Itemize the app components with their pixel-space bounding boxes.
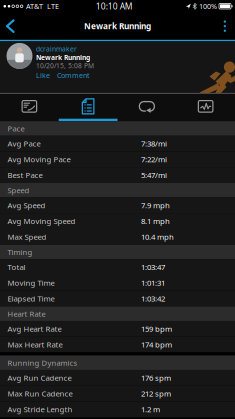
staticText: 1:01:31	[141, 278, 165, 288]
staticText: Avg Run Cadence	[7, 373, 71, 383]
staticText: 7.9 mph	[141, 200, 170, 210]
staticText: Avg Moving Pace	[7, 154, 70, 164]
staticText: Comment	[57, 70, 90, 80]
staticText: 8.1 mph	[141, 216, 170, 226]
staticText: 176 spm	[141, 373, 171, 383]
staticText: AT&T LTE	[26, 1, 59, 11]
button[interactable]: Charts	[176, 94, 235, 119]
staticText: Max Heart Rate	[7, 339, 62, 350]
staticText: 10/20/15, 5:08 PM	[36, 61, 94, 70]
staticText: Timing	[7, 247, 32, 257]
staticText: Max Run Cadence	[7, 388, 72, 399]
staticText: Speed	[7, 185, 29, 195]
staticText: 1:03:47	[141, 262, 165, 272]
staticText: Avg Stride Length	[7, 404, 72, 414]
staticText: 7:22/mi	[141, 154, 167, 164]
staticText: 7:38/mi	[141, 138, 167, 149]
staticText: 174 bpm	[141, 339, 172, 350]
staticText: dcrainmaker	[36, 44, 77, 53]
button[interactable]: Back	[0, 14, 13, 38]
staticText: Avg Heart Rate	[7, 324, 61, 334]
staticText: 100%	[199, 1, 217, 11]
button[interactable]: Like	[36, 70, 50, 80]
staticText: Avg Pace	[7, 138, 40, 149]
staticText: Elapsed Time	[7, 293, 54, 304]
staticText: Like	[36, 70, 50, 80]
button[interactable]: Laps	[117, 94, 176, 119]
staticText: 159 bpm	[141, 324, 172, 334]
staticText: 1:03:42	[141, 293, 165, 304]
button[interactable]: dcrainmaker	[36, 44, 77, 53]
staticText: Newark Running	[36, 53, 90, 62]
staticText: Avg Speed	[7, 200, 45, 210]
staticText: Avg Moving Speed	[7, 216, 75, 226]
button[interactable]: Stats	[59, 94, 118, 119]
staticText: 10.4 mph	[141, 232, 174, 242]
staticText: Best Pace	[7, 170, 42, 180]
button[interactable]: Comment	[57, 70, 90, 80]
staticText: 10:10 AM	[96, 1, 133, 12]
staticText: Newark Running	[84, 21, 151, 32]
staticText: Total	[7, 262, 25, 272]
staticText: Pace	[7, 123, 24, 133]
button[interactable]: Summary	[0, 94, 59, 119]
staticText: Heart Rate	[7, 309, 45, 319]
staticText: 212 spm	[141, 388, 171, 399]
button[interactable]: More	[224, 15, 235, 37]
staticText: 1.2 m	[141, 404, 160, 414]
staticText: 5:47/mi	[141, 170, 167, 180]
staticText: Running Dynamics	[7, 358, 77, 368]
button[interactable]: Profile	[6, 43, 32, 69]
staticText: Moving Time	[7, 278, 54, 288]
staticText: Max Speed	[7, 232, 46, 242]
